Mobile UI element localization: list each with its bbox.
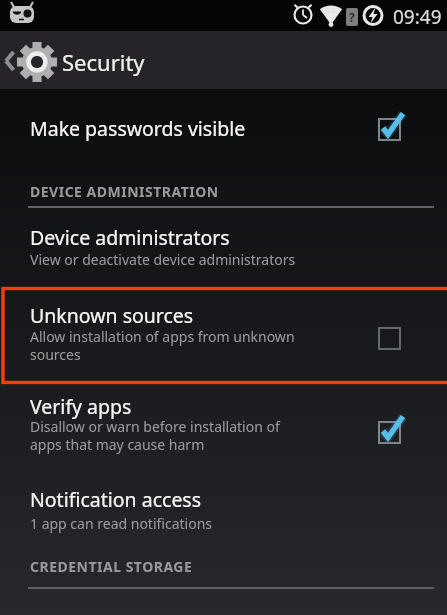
staticText: ? [349, 9, 355, 25]
button[interactable]: Verify apps [0, 385, 447, 461]
staticText: sources [30, 345, 81, 364]
button[interactable]: Device administrators [0, 213, 447, 285]
staticText: 1 app can read notifications [30, 514, 213, 533]
staticText: apps that may cause harm [30, 435, 205, 454]
staticText: Device administrators [30, 224, 230, 251]
staticText: 09:49 [393, 4, 442, 30]
staticText: Notification access [30, 486, 202, 513]
staticText: DEVICE ADMINISTRATION [30, 182, 219, 201]
staticText: Disallow or warn before installation of [30, 417, 280, 436]
button[interactable]: Unknown sources [0, 288, 447, 383]
button[interactable]: Make passwords visible [0, 94, 447, 166]
button[interactable]: Notification access [0, 465, 447, 541]
button[interactable]: Security [0, 31, 220, 89]
staticText: Allow installation of apps from unknown [30, 327, 295, 346]
staticText: Security [62, 47, 145, 77]
staticText: Verify apps [30, 393, 132, 420]
staticText: CREDENTIAL STORAGE [30, 557, 193, 576]
staticText: Make passwords visible [30, 115, 246, 142]
staticText: Unknown sources [30, 302, 194, 329]
staticText: View or deactivate device administrators [30, 250, 296, 269]
